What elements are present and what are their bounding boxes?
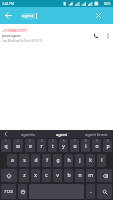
staticText: u bbox=[73, 143, 77, 150]
button[interactable]: 9 bbox=[92, 139, 101, 152]
button[interactable]: 5 bbox=[48, 139, 57, 152]
button[interactable]: 4 bbox=[37, 139, 46, 152]
staticText: f bbox=[46, 157, 48, 164]
staticText: s bbox=[23, 157, 26, 164]
staticText: c bbox=[45, 172, 48, 179]
button[interactable]: Emoji bbox=[18, 184, 27, 199]
staticText: 1 bbox=[5, 139, 7, 143]
button[interactable]: h bbox=[64, 154, 73, 167]
button[interactable]: . bbox=[86, 184, 95, 199]
button[interactable]: 6 bbox=[59, 139, 68, 152]
button[interactable]: m bbox=[86, 169, 95, 182]
staticText: z bbox=[23, 172, 26, 179]
staticText: k bbox=[89, 157, 92, 164]
staticText: m bbox=[88, 172, 93, 179]
staticText: 4 bbox=[41, 139, 43, 143]
button[interactable]: Clear search bbox=[90, 7, 107, 24]
staticText: q bbox=[4, 143, 8, 150]
button[interactable]: More options bbox=[102, 30, 113, 41]
staticText: n bbox=[78, 172, 82, 179]
button[interactable]: g bbox=[53, 154, 62, 167]
button[interactable]: agent bbox=[45, 130, 79, 138]
staticText: d bbox=[34, 157, 38, 164]
staticText: 5 bbox=[52, 139, 54, 143]
button[interactable]: b bbox=[64, 169, 73, 182]
staticText: o bbox=[95, 143, 99, 150]
staticText: j bbox=[79, 157, 81, 164]
staticText: +919888009971 bbox=[2, 28, 28, 33]
button[interactable]: Back bbox=[0, 7, 17, 24]
staticText: 9 bbox=[96, 139, 98, 143]
staticText: agent bbox=[22, 13, 34, 19]
button[interactable]: Expand suggestions bbox=[0, 130, 11, 138]
staticText: e bbox=[29, 143, 32, 150]
button[interactable]: s bbox=[19, 154, 29, 167]
staticText: y bbox=[62, 143, 65, 150]
staticText: 0 bbox=[107, 139, 109, 143]
button[interactable]: j bbox=[75, 154, 84, 167]
button[interactable]: agent bbox=[21, 7, 96, 24]
staticText: h bbox=[67, 157, 71, 164]
button[interactable]: agent finest bbox=[79, 130, 113, 138]
button[interactable]: x bbox=[31, 169, 40, 182]
staticText: a bbox=[11, 157, 14, 164]
staticText: 2 bbox=[17, 139, 19, 143]
staticText: p bbox=[106, 143, 110, 150]
button[interactable]: 3 bbox=[25, 139, 35, 152]
staticText: x bbox=[34, 172, 37, 179]
staticText: agentis bbox=[21, 132, 35, 137]
button[interactable]: l bbox=[97, 154, 106, 167]
button[interactable]: n bbox=[75, 169, 84, 182]
staticText: w bbox=[16, 143, 20, 150]
staticText: v bbox=[56, 172, 59, 179]
staticText: 84% bbox=[104, 2, 111, 6]
button[interactable]: c bbox=[42, 169, 51, 182]
button[interactable]: 2 bbox=[13, 139, 23, 152]
button[interactable]: 1 bbox=[1, 139, 11, 152]
staticText: i bbox=[85, 143, 87, 150]
button[interactable]: a bbox=[7, 154, 17, 167]
button[interactable]: v bbox=[53, 169, 62, 182]
staticText: 3:44 PM bbox=[2, 2, 14, 6]
staticText: . bbox=[90, 188, 92, 195]
staticText: Last Modified On Dec 6 07:10:13 bbox=[2, 39, 43, 43]
staticText: 6 bbox=[63, 139, 65, 143]
staticText: r bbox=[40, 143, 43, 150]
button[interactable]: d bbox=[31, 154, 40, 167]
button[interactable]: Search bbox=[97, 184, 112, 199]
button[interactable]: k bbox=[86, 154, 95, 167]
staticText: l bbox=[101, 157, 103, 164]
button[interactable]: Shift bbox=[1, 169, 17, 182]
button[interactable]: 8 bbox=[81, 139, 90, 152]
staticText: b bbox=[67, 172, 71, 179]
button[interactable]: f bbox=[42, 154, 51, 167]
staticText: g bbox=[56, 157, 60, 164]
staticText: t bbox=[52, 143, 54, 150]
button[interactable]: +919888009971 bbox=[0, 24, 113, 46]
button[interactable]: Call bbox=[89, 29, 102, 42]
staticText: agent finest bbox=[85, 132, 108, 137]
staticText: 3 bbox=[29, 139, 31, 143]
staticText: 8 bbox=[85, 139, 87, 143]
button[interactable]: 0 bbox=[103, 139, 112, 152]
staticText: 7 bbox=[74, 139, 76, 143]
staticText: ?123 bbox=[4, 189, 13, 194]
button[interactable]: Backspace bbox=[97, 169, 112, 182]
staticText: agent bbox=[56, 132, 68, 137]
button[interactable]: agentis bbox=[11, 130, 45, 138]
button[interactable]: z bbox=[19, 169, 29, 182]
staticText: pivot agent bbox=[2, 33, 21, 38]
button[interactable]: 7 bbox=[70, 139, 79, 152]
button[interactable]: ?123 bbox=[1, 184, 16, 199]
